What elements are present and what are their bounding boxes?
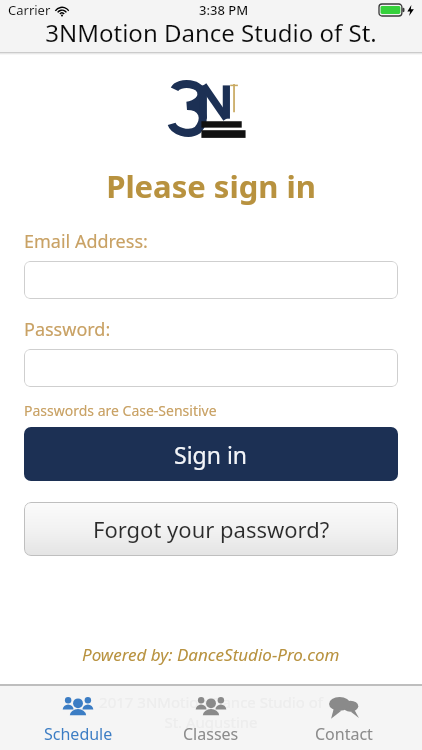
staticText: Passwords are Case-Sensitive [24,401,217,420]
staticText: Powered by: DanceStudio-Pro.com [82,643,340,666]
staticText: Password: [24,317,111,342]
staticText: 3:38 PM [199,1,249,19]
button[interactable] [24,349,398,387]
staticText: Contact [315,723,373,745]
button[interactable]: Classes [156,688,266,750]
staticText: Forgot your password? [93,514,330,544]
button[interactable]: Forgot your password? [24,502,398,556]
staticText: Carrier [8,1,51,19]
staticText: Email Address: [24,229,148,254]
staticText: Please sign in [106,165,316,207]
button[interactable]: Contact [289,688,399,750]
staticText: 3NMotion Dance Studio of St. Augustine [0,16,422,49]
button[interactable]: Sign in [24,427,398,481]
button[interactable]: Schedule [23,688,133,750]
button[interactable] [24,261,398,299]
staticText: Sign in [174,439,248,470]
staticText: 2017 3NMotion Dance Studio of St. August… [99,692,323,732]
staticText: Schedule [44,723,113,745]
staticText: Classes [183,723,239,745]
